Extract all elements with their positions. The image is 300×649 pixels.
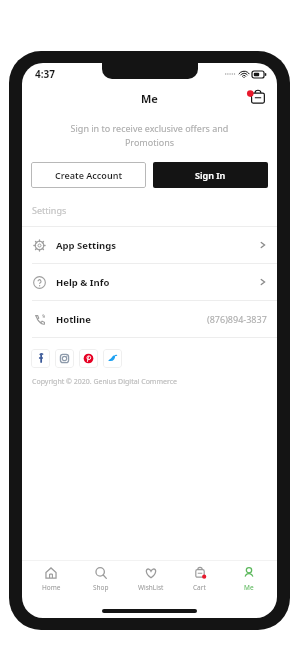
staticText: Me — [141, 91, 158, 106]
button[interactable]: Help & Info — [22, 264, 277, 300]
staticText: Me — [244, 583, 254, 592]
button[interactable]: Create Account — [31, 162, 146, 188]
button[interactable]: Shop — [76, 561, 126, 597]
staticText: App Settings — [56, 239, 116, 252]
button[interactable]: Cart — [175, 561, 224, 597]
button[interactable]: Me — [224, 561, 273, 597]
staticText: Sign in to receive exclusive offers and … — [50, 122, 249, 149]
button[interactable]: Social link — [55, 349, 74, 368]
button[interactable]: Home — [26, 561, 76, 597]
staticText: Home — [42, 583, 61, 592]
button[interactable]: Social link — [79, 349, 98, 368]
staticText: Shop — [93, 583, 109, 592]
button[interactable]: Hotline — [22, 301, 277, 337]
staticText: WishList — [138, 583, 164, 592]
staticText: 4:37 — [35, 67, 55, 81]
staticText: 1 — [252, 95, 255, 102]
button[interactable]: App Settings — [22, 227, 277, 263]
button[interactable]: Sign In — [153, 162, 268, 188]
staticText: Settings — [32, 204, 67, 216]
button[interactable]: WishList — [126, 561, 175, 597]
button[interactable]: Cart — [243, 85, 269, 111]
staticText: Copyright © 2020. Genius Digital Commerc… — [32, 377, 177, 387]
button[interactable]: Social link — [31, 349, 50, 368]
button[interactable]: Social link — [103, 349, 122, 368]
staticText: Hotline — [56, 313, 91, 326]
staticText: Help & Info — [56, 276, 110, 289]
staticText: Cart — [193, 583, 206, 592]
staticText: Sign In — [195, 169, 226, 181]
staticText: Create Account — [55, 169, 123, 181]
staticText: (876)894-3837 — [207, 313, 267, 325]
